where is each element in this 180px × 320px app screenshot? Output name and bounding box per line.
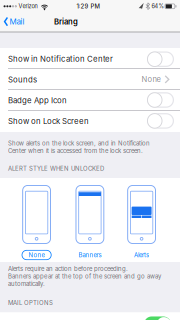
staticText: 64% xyxy=(151,3,163,10)
staticText: None xyxy=(29,251,45,259)
button[interactable]: Banners xyxy=(73,185,107,263)
staticText: 1:29 PM xyxy=(76,3,99,10)
staticText: Alerts require an action before proceedi… xyxy=(8,265,128,272)
staticText: MAIL OPTIONS xyxy=(8,299,53,306)
staticText: Show alerts on the lock screen, and in N… xyxy=(8,140,150,147)
staticText: Show in Notification Center xyxy=(8,54,113,64)
button[interactable]: Sounds, None xyxy=(0,69,180,90)
staticText: Show on Lock Screen xyxy=(8,116,89,126)
button[interactable]: None xyxy=(20,185,54,263)
staticText: Briang xyxy=(54,17,78,26)
staticText: Verizon xyxy=(18,3,37,10)
button[interactable]: Alerts xyxy=(125,185,159,263)
staticText: Mail xyxy=(10,17,25,26)
button[interactable]: Mail option toggle xyxy=(144,316,171,320)
staticText: None xyxy=(141,75,160,84)
button[interactable]: Badge App Icon xyxy=(147,92,174,108)
staticText: Banners xyxy=(78,251,101,259)
staticText: Sounds xyxy=(8,75,37,84)
staticText: Center when it is accessed from the lock… xyxy=(8,147,143,154)
staticText: Badge App Icon xyxy=(8,96,67,105)
staticText: Banners appear at the top of the screen … xyxy=(8,273,161,280)
staticText: Alerts xyxy=(134,251,149,259)
button[interactable]: Show in Notification Center xyxy=(147,51,174,67)
staticText: ALERT STYLE WHEN UNLOCKED xyxy=(8,165,104,172)
staticText: automatically. xyxy=(8,280,45,287)
button[interactable]: Show on Lock Screen xyxy=(147,113,174,129)
button[interactable]: Back xyxy=(0,14,40,29)
